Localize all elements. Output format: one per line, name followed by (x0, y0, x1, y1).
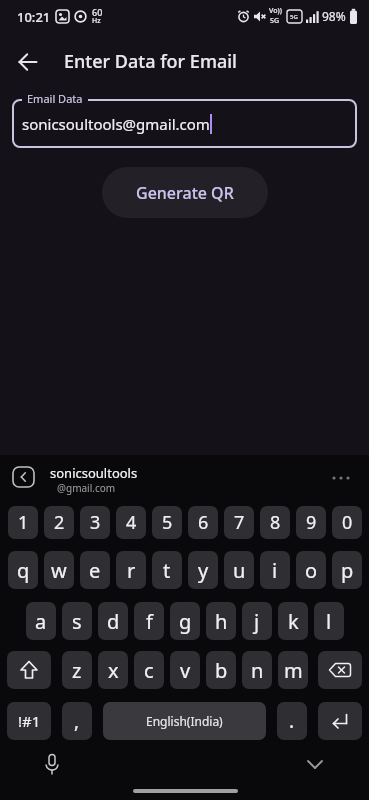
button[interactable]: x (98, 651, 128, 689)
staticText: Hz (92, 16, 101, 26)
staticText: 10:21 (17, 8, 51, 26)
button[interactable]: q (8, 551, 38, 589)
staticText: 3 (90, 510, 101, 535)
button[interactable]: 2 (44, 506, 74, 539)
button[interactable]: . (277, 702, 307, 740)
staticText: t (163, 557, 171, 584)
button[interactable]: b (206, 651, 236, 689)
button[interactable]: u (224, 551, 254, 589)
staticText: d (107, 608, 120, 635)
staticText: l (326, 608, 332, 635)
button[interactable]: z (62, 651, 92, 689)
button[interactable]: 7 (224, 506, 254, 539)
button[interactable]: h (206, 602, 236, 640)
button[interactable]: d (98, 602, 128, 640)
staticText: 5G (290, 13, 298, 21)
button[interactable]: r (116, 551, 146, 589)
staticText: 5G (270, 16, 280, 26)
staticText: !#1 (18, 711, 41, 731)
button[interactable] (302, 753, 328, 775)
staticText: q (17, 557, 30, 584)
button[interactable]: f (134, 602, 164, 640)
button[interactable]: s (62, 602, 92, 640)
button[interactable]: i (260, 551, 290, 589)
staticText: c (144, 657, 154, 684)
staticText: v (180, 657, 191, 684)
staticText: w (51, 557, 67, 584)
staticText: 2 (54, 510, 65, 535)
button[interactable] (7, 651, 51, 689)
staticText: 4 (126, 510, 137, 535)
staticText: u (233, 557, 246, 584)
button[interactable] (318, 651, 362, 689)
staticText: 5 (162, 510, 173, 535)
staticText: g (179, 608, 192, 635)
staticText: z (72, 657, 82, 684)
button[interactable]: t (152, 551, 182, 589)
button[interactable]: Generate QR (102, 167, 268, 218)
staticText: b (215, 657, 228, 684)
staticText: @gmail.com (57, 481, 116, 495)
button[interactable]: 8 (260, 506, 290, 539)
staticText: x (108, 657, 119, 684)
button[interactable]: y (188, 551, 218, 589)
staticText: , (74, 708, 80, 734)
staticText: y (198, 557, 209, 584)
button[interactable] (318, 702, 362, 740)
button[interactable]: l (314, 602, 344, 640)
staticText: English(India) (146, 713, 223, 729)
button[interactable]: English(India) (103, 702, 266, 740)
staticText: 9 (306, 510, 317, 535)
button[interactable] (11, 466, 35, 488)
staticText: p (341, 557, 354, 584)
button[interactable]: m (278, 651, 308, 689)
staticText: . (289, 708, 295, 734)
button[interactable] (8, 42, 48, 82)
button[interactable]: sonicsoultools (50, 464, 138, 482)
button[interactable]: 4 (116, 506, 146, 539)
staticText: 0 (342, 510, 353, 535)
staticText: n (251, 657, 264, 684)
button[interactable] (38, 751, 66, 779)
button[interactable]: 5 (152, 506, 182, 539)
staticText: o (305, 557, 318, 584)
staticText: 7 (234, 510, 245, 535)
staticText: m (284, 657, 303, 684)
staticText: r (127, 557, 136, 584)
staticText: 8 (270, 510, 281, 535)
button[interactable]: a (26, 602, 56, 640)
button[interactable]: 9 (296, 506, 326, 539)
button[interactable]: 0 (332, 506, 362, 539)
button[interactable]: j (242, 602, 272, 640)
staticText: k (288, 608, 299, 635)
staticText: 1 (18, 510, 29, 535)
button[interactable]: w (44, 551, 74, 589)
button[interactable]: e (80, 551, 110, 589)
button[interactable]: v (170, 651, 200, 689)
button[interactable]: , (62, 702, 92, 740)
staticText: e (89, 557, 101, 584)
button[interactable]: 6 (188, 506, 218, 539)
button[interactable]: n (242, 651, 272, 689)
staticText: Generate QR (136, 182, 234, 204)
staticText: s (72, 608, 82, 635)
staticText: 98% (322, 8, 346, 24)
staticText: 60 (92, 6, 103, 18)
button[interactable]: 1 (8, 506, 38, 539)
staticText: sonicsoultools (50, 464, 138, 482)
button[interactable]: 3 (80, 506, 110, 539)
staticText: 6 (198, 510, 209, 535)
staticText: a (35, 608, 47, 635)
staticText: sonicsoultools@gmail.com (22, 114, 210, 134)
button[interactable]: g (170, 602, 200, 640)
button[interactable]: !#1 (7, 702, 51, 740)
button[interactable]: o (296, 551, 326, 589)
staticText: Enter Data for Email (64, 49, 237, 74)
button[interactable]: k (278, 602, 308, 640)
staticText: i (272, 557, 278, 584)
staticText: j (254, 608, 260, 635)
button[interactable]: p (332, 551, 362, 589)
button[interactable]: sonicsoultools@gmail.com (12, 99, 357, 148)
staticText: h (215, 608, 228, 635)
button[interactable]: c (134, 651, 164, 689)
